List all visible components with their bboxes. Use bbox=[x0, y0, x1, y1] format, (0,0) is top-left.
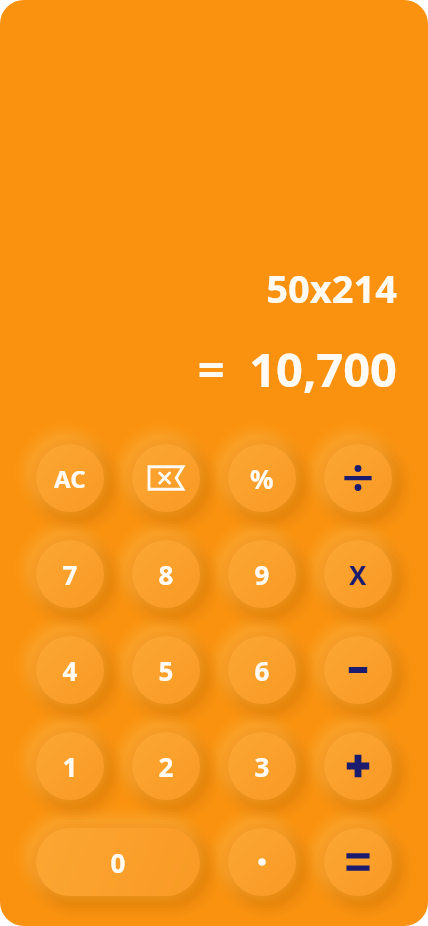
button[interactable]: 7 bbox=[36, 540, 104, 608]
button[interactable]: 2 bbox=[132, 732, 200, 800]
button[interactable]: 9 bbox=[228, 540, 296, 608]
button[interactable]: 3 bbox=[228, 732, 296, 800]
button[interactable]: Backspace bbox=[132, 444, 200, 512]
button[interactable]: Percent bbox=[228, 444, 296, 512]
button[interactable]: 8 bbox=[132, 540, 200, 608]
button[interactable]: 6 bbox=[228, 636, 296, 704]
button[interactable]: Divide bbox=[324, 444, 392, 512]
button[interactable]: 4 bbox=[36, 636, 104, 704]
button[interactable]: Decimal point bbox=[228, 828, 296, 896]
button[interactable]: Minus bbox=[324, 636, 392, 704]
button[interactable]: Plus bbox=[324, 732, 392, 800]
button[interactable]: Multiply bbox=[324, 540, 392, 608]
button[interactable]: 0 bbox=[36, 828, 200, 896]
button[interactable]: Equals bbox=[324, 828, 392, 896]
button[interactable]: 5 bbox=[132, 636, 200, 704]
button[interactable]: 1 bbox=[36, 732, 104, 800]
button[interactable]: All clear bbox=[36, 444, 104, 512]
